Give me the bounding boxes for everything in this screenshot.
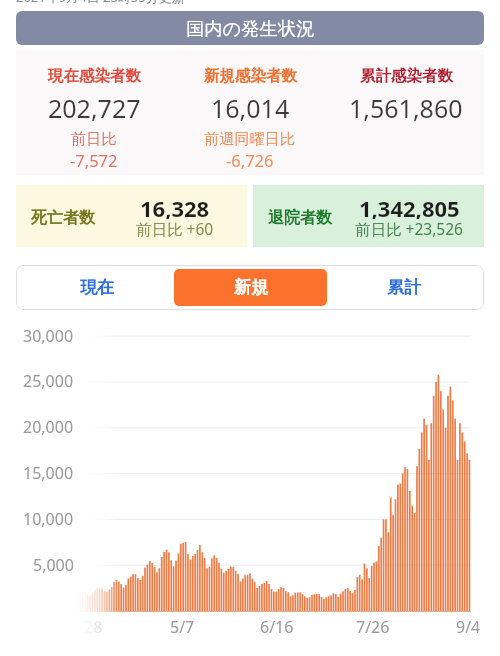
staticText: 3/28 [69, 616, 103, 638]
staticText: 国内の発生状況 [186, 17, 315, 40]
button[interactable]: 退院者数 [253, 185, 484, 247]
staticText: 1,342,805 [359, 193, 460, 219]
staticText: 15,000 [23, 462, 74, 484]
staticText: 退院者数 [268, 208, 332, 228]
staticText: 20,000 [23, 416, 74, 438]
staticText: 202,727 [48, 91, 141, 125]
staticText: 30,000 [23, 325, 74, 347]
staticText: 新規 [234, 277, 268, 298]
staticText: 25,000 [23, 370, 74, 392]
staticText: 死亡者数 [31, 208, 95, 228]
staticText: 前週同曜日比 [204, 129, 296, 148]
staticText: 7/26 [356, 616, 390, 638]
staticText: -6,726 [226, 149, 274, 171]
staticText: 前日比 [71, 129, 117, 148]
staticText: 5/7 [170, 616, 195, 638]
button[interactable]: 現在 [20, 269, 174, 306]
staticText: 5,000 [33, 554, 74, 576]
staticText: 累計 [387, 277, 421, 298]
staticText: 現在感染者数 [48, 66, 141, 86]
staticText: 6/16 [260, 616, 294, 638]
staticText: 累計感染者数 [360, 66, 453, 86]
staticText: 1,561,860 [349, 91, 463, 125]
button[interactable]: 新規 [174, 269, 327, 306]
staticText: 現在 [80, 277, 114, 298]
staticText: 新規感染者数 [204, 66, 297, 86]
button[interactable]: 累計 [327, 269, 480, 306]
button[interactable]: 死亡者数 [16, 185, 247, 247]
staticText: 9/4 [456, 616, 481, 638]
staticText: 前日比 +23,526 [355, 218, 463, 239]
staticText: -7,572 [70, 149, 118, 171]
staticText: 16,328 [140, 193, 210, 219]
staticText: 10,000 [23, 508, 74, 530]
button[interactable]: 国内の発生状況 [16, 11, 484, 45]
staticText: 16,014 [211, 91, 290, 125]
staticText: 前日比 +60 [136, 218, 214, 239]
staticText: 2021年9月4日 23時55分更新 [16, 0, 185, 6]
